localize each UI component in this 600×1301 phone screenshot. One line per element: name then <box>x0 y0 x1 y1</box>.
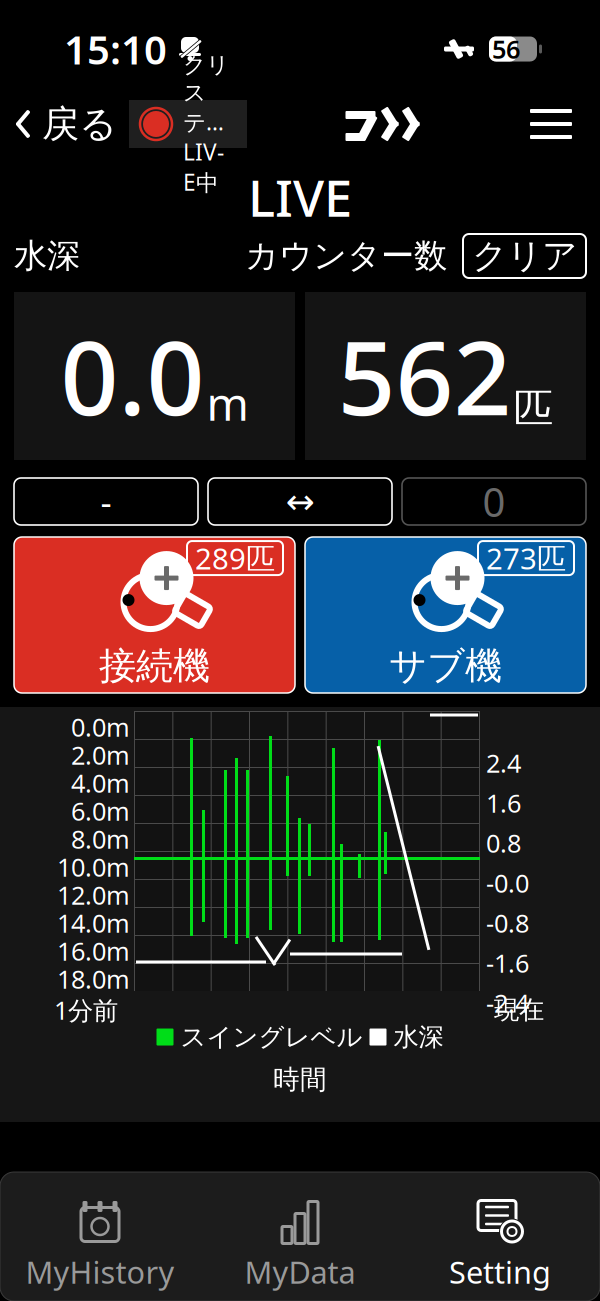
staticText: LIVE <box>248 163 352 231</box>
button[interactable]: サブ機 <box>305 537 586 693</box>
staticText: -0.8 <box>486 906 529 940</box>
button[interactable]: メニュー <box>516 92 586 156</box>
staticText: 接続機 <box>99 643 210 689</box>
staticText: 1.6 <box>486 786 521 820</box>
staticText: MyData <box>244 1251 355 1292</box>
staticText: 18.0m <box>57 962 130 996</box>
button[interactable]: MyData <box>200 1181 400 1291</box>
staticText: スイングレベル <box>180 1021 362 1052</box>
staticText: 15:10 <box>64 22 167 75</box>
staticText: 時間 <box>273 1063 327 1096</box>
staticText: 14.0m <box>57 906 130 940</box>
staticText: カウンター数 <box>245 235 447 276</box>
staticText: MyHistory <box>25 1251 174 1292</box>
staticText: -2.4 <box>486 986 529 1020</box>
button[interactable]: 接続機 <box>14 537 295 693</box>
staticText: 2.4 <box>486 746 521 780</box>
staticText: 273匹 <box>486 539 566 578</box>
staticText: 6.0m <box>71 794 130 828</box>
button[interactable]: クリア <box>463 234 586 278</box>
staticText: 16.0m <box>57 934 130 968</box>
staticText: 戻る <box>42 101 117 147</box>
staticText: -0.0 <box>486 866 529 900</box>
button[interactable]: 切替 <box>208 478 392 525</box>
staticText: 匹 <box>513 384 553 433</box>
staticText: 1分前 <box>54 993 118 1027</box>
staticText: 4.0m <box>71 766 130 800</box>
staticText: 0.8 <box>486 826 521 860</box>
staticText: 56 <box>492 32 520 66</box>
staticText: 0.0 <box>60 309 204 443</box>
button[interactable]: クリステ… <box>129 100 247 148</box>
staticText: LIVE中 <box>183 137 224 197</box>
staticText: m <box>206 373 248 433</box>
staticText: クリステ… <box>183 51 229 137</box>
staticText: 0.0m <box>71 710 130 744</box>
button[interactable]: 戻る <box>0 92 123 156</box>
staticText: 8.0m <box>71 822 130 856</box>
button[interactable]: MyHistory <box>0 1181 200 1291</box>
staticText: 水深 <box>393 1021 443 1052</box>
button[interactable]: マイナス <box>14 478 198 525</box>
staticText: 2.0m <box>71 738 130 772</box>
staticText: 0 <box>482 475 505 528</box>
staticText: ↔ <box>285 482 314 521</box>
staticText: 289匹 <box>195 539 275 578</box>
staticText: 水深 <box>14 235 80 276</box>
staticText: -1.6 <box>486 946 529 980</box>
staticText: 562 <box>337 309 511 443</box>
staticText: - <box>100 478 111 524</box>
staticText: サブ機 <box>389 643 502 689</box>
staticText: 12.0m <box>57 878 130 912</box>
staticText: クリア <box>472 235 577 277</box>
button[interactable]: ゼロ <box>402 478 586 525</box>
staticText: 現在 <box>494 994 544 1025</box>
button[interactable]: Setting <box>400 1181 600 1291</box>
staticText: Setting <box>449 1251 551 1292</box>
staticText: 10.0m <box>57 850 130 884</box>
